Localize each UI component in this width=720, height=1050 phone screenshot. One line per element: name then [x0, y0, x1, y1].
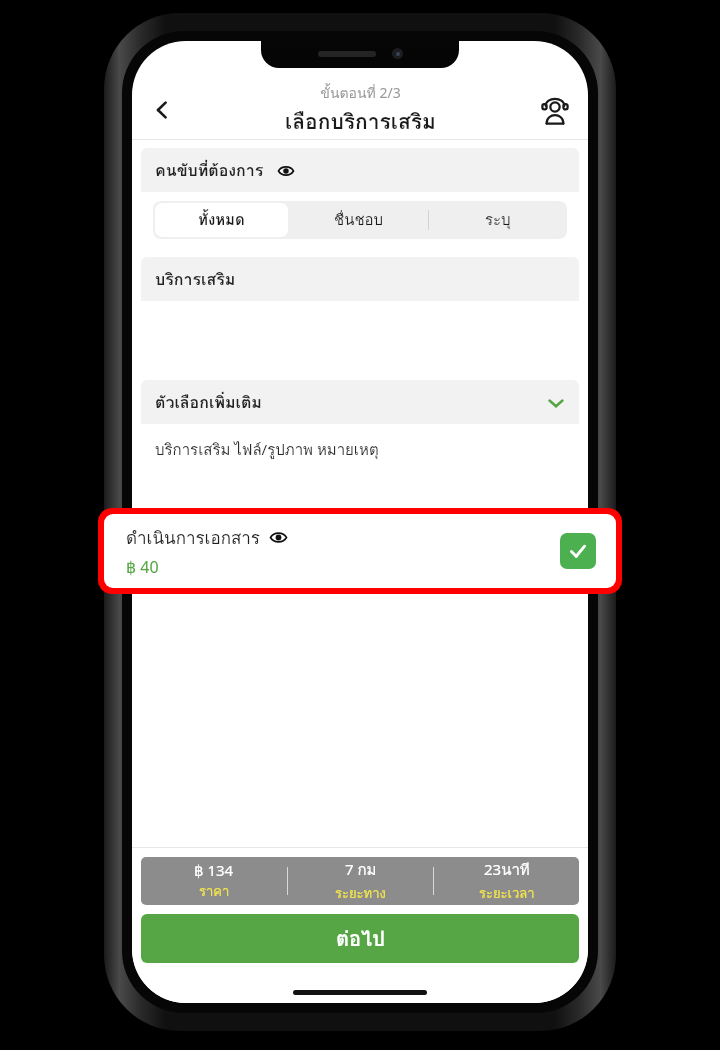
staticText: ราคา	[199, 881, 230, 902]
button[interactable]: ดำเนินการเอกสาร	[104, 514, 616, 588]
staticText: ทั้งหมด	[198, 208, 245, 232]
button[interactable]: บริการเสริม	[141, 257, 579, 301]
staticText: คนขับที่ต้องการ	[155, 158, 264, 183]
button[interactable]: Selected	[560, 533, 596, 569]
button[interactable]: ระบุ	[429, 201, 567, 239]
button[interactable]: บริการเสริม ไฟล์/รูปภาพ หมายเหตุ	[141, 424, 579, 476]
button[interactable]: ฿ 134	[141, 857, 579, 905]
staticText: ขั้นตอนที่ 2/3	[320, 82, 401, 104]
button[interactable]: ชื่นชอบ	[290, 201, 428, 239]
staticText: ระบุ	[485, 208, 511, 232]
staticText: ตัวเลือกเพิ่มเติม	[155, 390, 262, 415]
staticText: ระยะเวลา	[479, 883, 535, 904]
staticText: ฿ 40	[126, 556, 159, 578]
button[interactable]: Back	[138, 86, 186, 134]
staticText: บริการเสริม	[155, 267, 236, 292]
staticText: บริการเสริม ไฟล์/รูปภาพ หมายเหตุ	[155, 438, 379, 462]
staticText: ต่อไป	[336, 923, 385, 955]
button[interactable]: Support	[532, 87, 578, 133]
button[interactable]: ตัวเลือกเพิ่มเติม	[141, 380, 579, 424]
button[interactable]: ทั้งหมด	[155, 203, 288, 237]
staticText: ชื่นชอบ	[334, 208, 384, 232]
staticText: ระยะทาง	[335, 883, 386, 904]
staticText: 23นาที	[484, 858, 530, 882]
staticText: 7 กม	[345, 858, 377, 882]
button[interactable]: คนขับที่ต้องการ	[141, 148, 579, 192]
staticText: ดำเนินการเอกสาร	[126, 524, 260, 551]
staticText: เลือกบริการเสริม	[285, 105, 436, 138]
staticText: ฿ 134	[194, 860, 234, 880]
button[interactable]: ต่อไป	[141, 914, 579, 963]
